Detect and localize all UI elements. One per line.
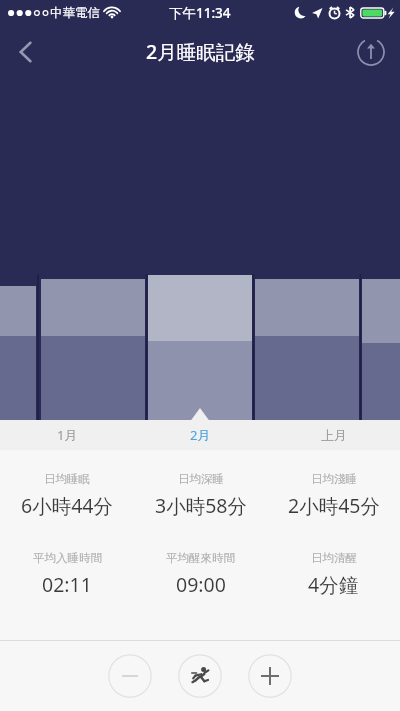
button[interactable]: Activity [178,654,222,698]
staticText: 上月 [321,427,347,443]
button[interactable]: 平均入睡時間 [0,549,134,600]
staticText: 4分鐘 [308,571,359,598]
button[interactable]: 上月 [267,420,400,450]
staticText: 1月 [57,426,78,444]
staticText: 3小時58分 [155,492,247,519]
staticText: 02:11 [42,571,92,598]
button[interactable]: 日均淺睡 [267,470,400,521]
button[interactable]: Sleep chart [0,78,400,420]
staticText: 2月睡眠記錄 [146,38,255,65]
staticText: 2月 [190,426,211,444]
button[interactable]: 平均醒來時間 [134,549,267,600]
button[interactable]: 日均睡眠 [0,470,134,521]
staticText: 下午11:34 [169,4,231,22]
button[interactable]: Add [248,654,292,698]
staticText: 日均睡眠 [44,472,90,486]
staticText: 6小時44分 [21,492,113,519]
button[interactable]: Decrease [108,654,152,698]
button[interactable]: 1月 [0,420,134,450]
staticText: 09:00 [176,571,226,598]
staticText: 日均淺睡 [311,472,357,486]
button[interactable]: 日均深睡 [134,470,267,521]
button[interactable]: 日均清醒 [267,549,400,600]
button[interactable]: Back [0,26,52,78]
button[interactable]: 2月 [134,420,267,450]
staticText: 平均入睡時間 [33,551,102,565]
staticText: 日均深睡 [178,472,224,486]
staticText: 平均醒來時間 [166,551,235,565]
staticText: 2小時45分 [288,492,380,519]
button[interactable]: Share [354,35,388,69]
staticText: 中華電信 [50,5,100,21]
staticText: 日均清醒 [311,551,357,565]
